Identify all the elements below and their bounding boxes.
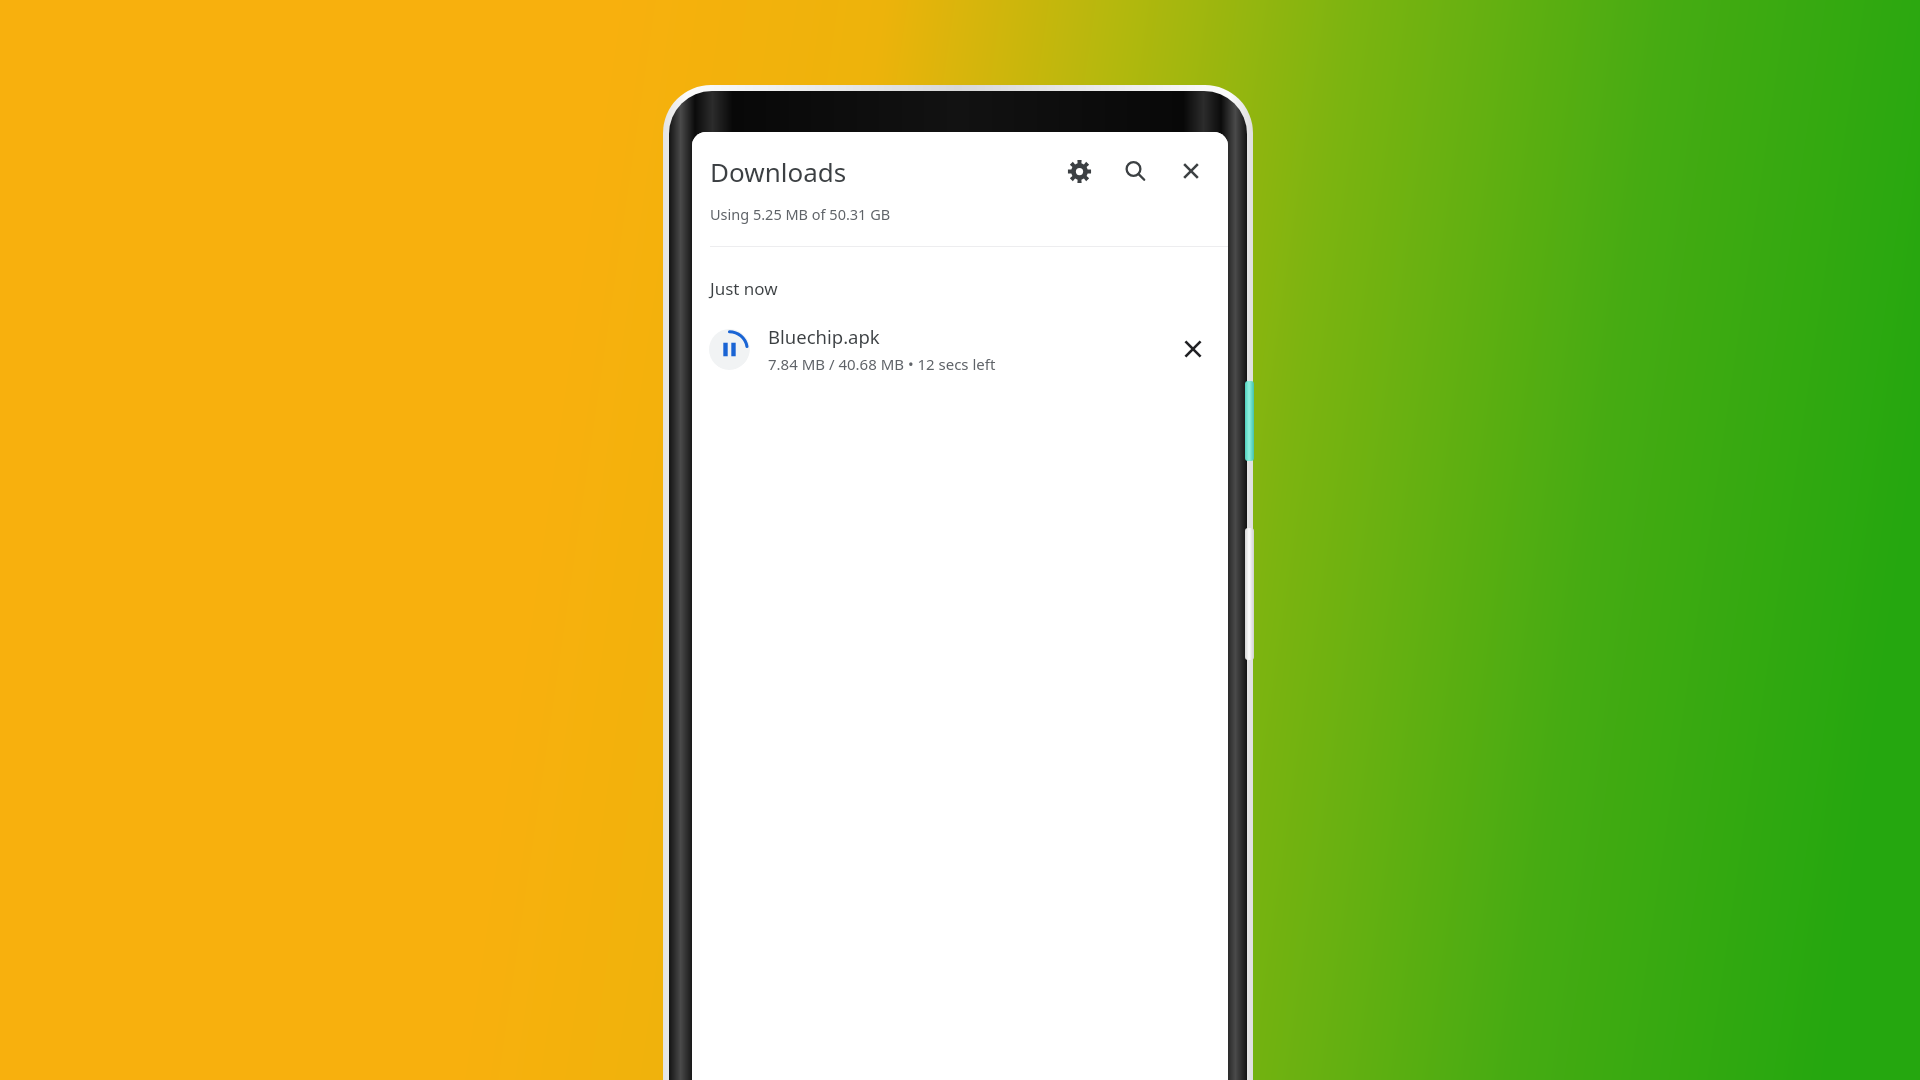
button[interactable]: Cancel download <box>1170 326 1216 372</box>
button[interactable]: Pause download <box>708 328 750 370</box>
button[interactable]: Settings <box>1058 150 1100 192</box>
button[interactable]: Pause download <box>692 316 1228 382</box>
button[interactable]: Volume <box>1245 528 1254 660</box>
staticText: Bluechip.apk <box>768 324 880 349</box>
staticText: 7.84 MB / 40.68 MB • 12 secs left <box>768 354 996 374</box>
staticText: Using 5.25 MB of 50.31 GB <box>710 204 891 224</box>
button[interactable]: Close <box>1170 150 1212 192</box>
button[interactable]: Power <box>1245 381 1254 461</box>
staticText: Downloads <box>710 154 847 189</box>
staticText: Just now <box>710 277 778 300</box>
button[interactable]: Search <box>1114 150 1156 192</box>
